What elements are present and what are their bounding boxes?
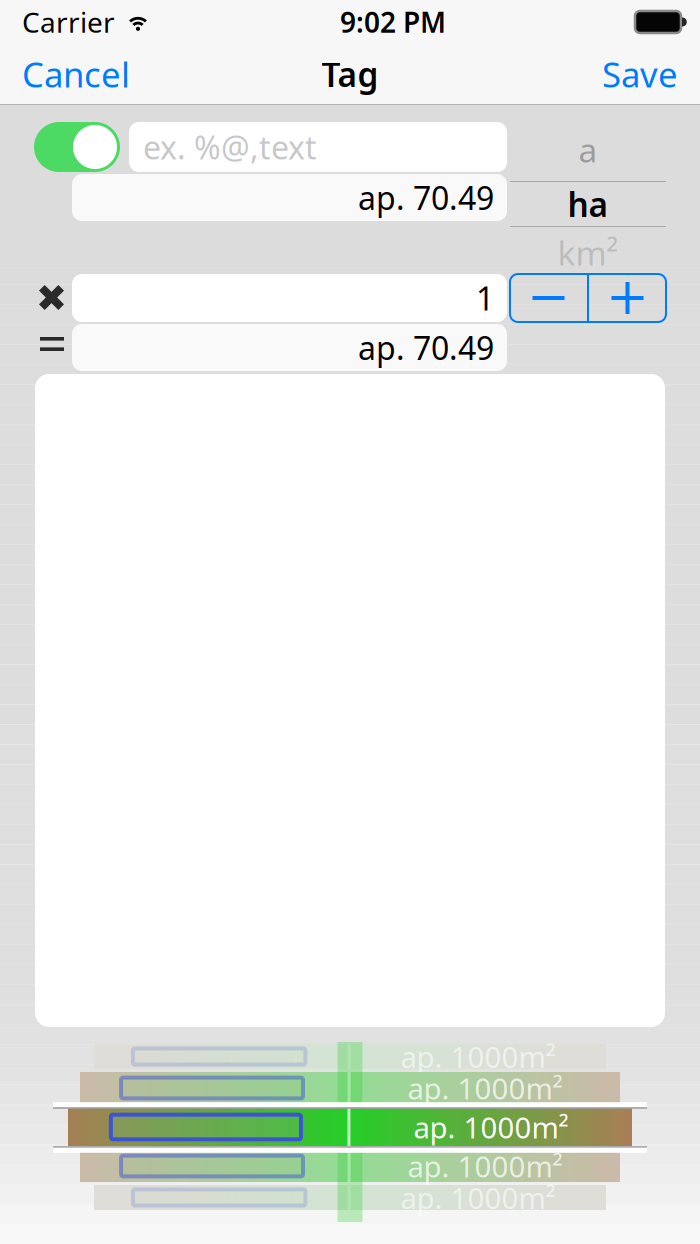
staticText: Save	[602, 51, 678, 97]
button[interactable]: Save	[588, 44, 700, 104]
button[interactable]: 1	[72, 274, 507, 322]
staticText: Tag	[321, 52, 378, 96]
staticText: a	[578, 127, 597, 172]
staticText: ap. 1000m²	[407, 1146, 562, 1185]
button[interactable]: Decrease	[510, 274, 587, 322]
staticText: Cancel	[22, 51, 130, 97]
staticText: 9:02 PM	[340, 3, 446, 41]
staticText: ap. 1000m²	[413, 1107, 568, 1146]
staticText: ex. %@,text	[143, 126, 317, 168]
staticText: ap. 1000m²	[400, 1178, 555, 1217]
button[interactable]: ex. %@,text	[129, 122, 507, 172]
button[interactable]: Cancel	[0, 44, 144, 104]
staticText: ap. 1000m²	[400, 1037, 555, 1076]
button[interactable]: Unit, hectares selected	[508, 118, 668, 278]
staticText: ha	[567, 182, 608, 226]
staticText: km²	[557, 230, 618, 275]
staticText: ap. 1000m²	[407, 1068, 562, 1107]
button[interactable]: Increase	[589, 274, 666, 322]
staticText: Carrier	[22, 3, 115, 41]
button[interactable]: Value picker, ap. 1000 square metres	[50, 1042, 650, 1222]
staticText: 1	[476, 277, 494, 319]
button[interactable]: Tag enabled	[34, 122, 120, 172]
staticText: ap. 70.49	[358, 176, 494, 219]
staticText: ap. 70.49	[358, 326, 494, 369]
